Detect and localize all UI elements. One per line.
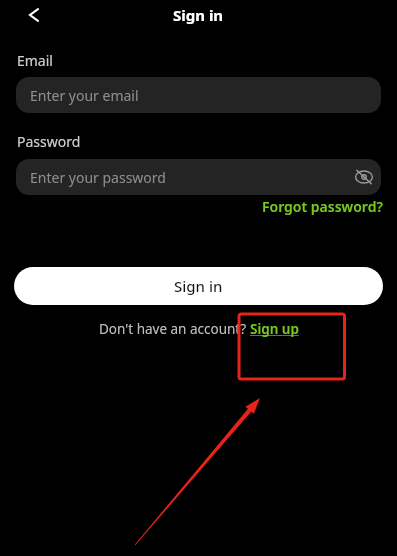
staticText: Sign in <box>174 276 223 296</box>
staticText: Enter your password <box>30 168 166 187</box>
staticText: Sign in <box>173 5 224 25</box>
button[interactable]: Sign in <box>14 267 383 305</box>
button[interactable] <box>24 5 44 25</box>
button[interactable]: Forgot password? <box>262 197 383 216</box>
staticText: Sign up <box>250 320 299 338</box>
button[interactable]: Enter your password <box>16 159 381 195</box>
button[interactable]: Sign up <box>250 320 299 338</box>
button[interactable]: Enter your email <box>16 77 381 113</box>
staticText: Enter your email <box>30 86 139 105</box>
staticText: Don't have an account? <box>99 320 250 338</box>
staticText: Email <box>17 51 53 70</box>
staticText: Password <box>17 132 81 151</box>
